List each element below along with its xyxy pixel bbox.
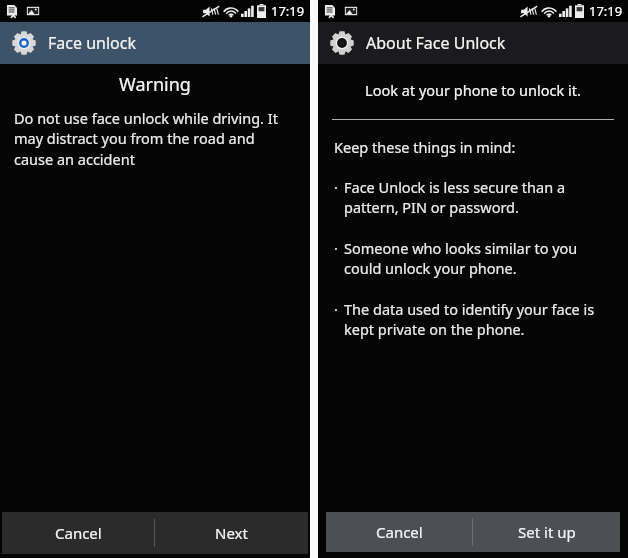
other: Settings [329,30,355,56]
staticText: 17:19 [271,2,305,20]
staticText: · [334,238,338,258]
staticText: Cancel [55,523,102,543]
staticText: 17:19 [589,2,623,20]
staticText: Do not use face unlock while driving. It… [14,108,294,170]
staticText: Someone who looks similar to you could u… [344,238,614,279]
staticText: Set it up [518,522,576,542]
button[interactable]: Next [155,512,308,554]
button[interactable]: Set it up [473,512,620,552]
staticText: Keep these things in mind: [334,137,516,157]
staticText: · [334,299,338,319]
button[interactable]: Settings [0,22,310,64]
staticText: Look at your phone to unlock it. [318,80,628,100]
button[interactable]: Cancel [326,512,472,552]
staticText: Warning [0,72,310,97]
staticText: Cancel [376,522,423,542]
other: Settings [11,30,37,56]
staticText: About Face Unlock [366,32,506,54]
staticText: Next [215,523,248,543]
button[interactable]: Cancel [2,512,154,554]
button[interactable]: Settings [318,22,628,64]
staticText: Face unlock [48,32,136,54]
staticText: The data used to identify your face is k… [344,299,614,340]
staticText: Face Unlock is less secure than a patter… [344,177,614,218]
staticText: · [334,177,338,197]
